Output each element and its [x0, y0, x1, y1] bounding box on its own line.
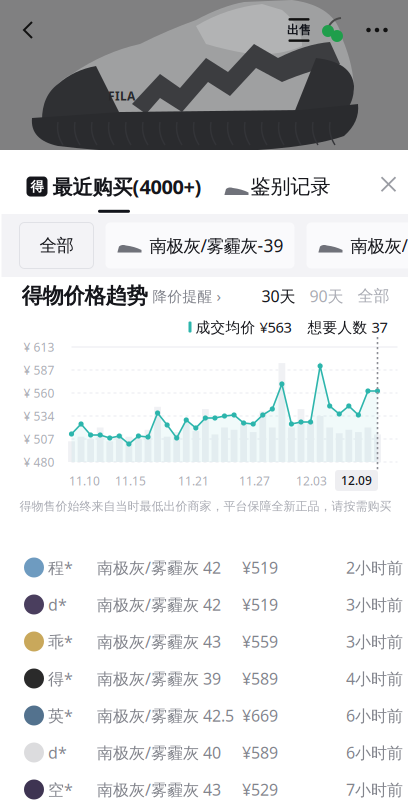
- staticText: 2小时前: [346, 557, 403, 578]
- staticText: 鉴别记录: [250, 174, 330, 199]
- button[interactable]: 南极灰/雾霾灰-4: [306, 222, 408, 268]
- staticText: 南极灰/雾霾灰 43: [97, 631, 221, 652]
- button[interactable]: d*: [0, 586, 408, 623]
- staticText: FILA: [108, 88, 135, 104]
- staticText: 南极灰/雾霾灰 40: [97, 742, 221, 763]
- staticText: d*: [48, 742, 67, 763]
- staticText: 11.27: [239, 473, 270, 489]
- staticText: 11.21: [178, 473, 209, 489]
- staticText: ¥ 534: [23, 408, 54, 424]
- button[interactable]: 南极灰/雾霾灰-39: [105, 222, 294, 268]
- staticText: 11.10: [69, 473, 100, 489]
- staticText: 全部: [39, 235, 73, 256]
- staticText: 11.15: [115, 473, 146, 489]
- staticText: 南极灰/雾霾灰 42.5: [97, 705, 234, 726]
- button[interactable]: 全部: [343, 286, 389, 306]
- button[interactable]: Back: [12, 13, 46, 47]
- button[interactable]: 出售: [282, 13, 316, 47]
- staticText: ¥ 613: [23, 339, 54, 355]
- button[interactable]: 英*: [0, 697, 408, 734]
- staticText: 程*: [48, 557, 73, 578]
- staticText: 得*: [48, 668, 73, 689]
- staticText: ¥559: [242, 631, 278, 652]
- staticText: d*: [48, 594, 67, 615]
- staticText: ¥ 507: [23, 431, 54, 447]
- staticText: 得物售价始终来自当时最低出价商家，平台保障全新正品，请按需购买: [19, 499, 391, 514]
- staticText: ¥589: [242, 668, 278, 689]
- button[interactable]: Customer service: [318, 13, 352, 47]
- staticText: ¥519: [242, 594, 278, 615]
- staticText: 想要人数 37: [291, 317, 387, 337]
- staticText: 出售: [287, 23, 311, 37]
- staticText: ¥ 480: [23, 454, 54, 470]
- button[interactable]: 得物价格趋势: [21, 283, 221, 309]
- button[interactable]: 得*: [0, 660, 408, 697]
- staticText: ¥ 587: [23, 362, 54, 378]
- staticText: 12.03: [296, 473, 327, 489]
- button[interactable]: Close: [371, 167, 405, 201]
- button[interactable]: 全部: [19, 222, 93, 268]
- button[interactable]: 乖*: [0, 623, 408, 660]
- staticText: 全部: [357, 286, 389, 306]
- staticText: 3小时前: [346, 631, 403, 652]
- staticText: 6小时前: [346, 742, 403, 763]
- staticText: ¥529: [242, 779, 278, 800]
- button[interactable]: 程*: [0, 549, 408, 586]
- staticText: 3小时前: [346, 594, 403, 615]
- staticText: 南极灰/雾霾灰-39: [149, 234, 283, 257]
- staticText: 最近购买(4000+): [52, 173, 201, 200]
- button[interactable]: d*: [0, 734, 408, 771]
- staticText: 12.09: [341, 472, 372, 488]
- staticText: 4小时前: [346, 668, 403, 689]
- staticText: 30天: [261, 285, 295, 307]
- staticText: 乖*: [48, 631, 73, 652]
- staticText: ¥ 560: [23, 385, 54, 401]
- staticText: 得: [30, 178, 43, 195]
- button[interactable]: 90天: [295, 285, 343, 307]
- button[interactable]: More: [362, 15, 392, 45]
- button[interactable]: 30天: [261, 285, 295, 307]
- staticText: 7小时前: [346, 779, 403, 800]
- staticText: 南极灰/雾霾灰 42: [97, 594, 221, 615]
- staticText: 南极灰/雾霾灰 42: [97, 557, 221, 578]
- staticText: 降价提醒 ›: [152, 286, 221, 306]
- button[interactable]: 空*: [0, 771, 408, 808]
- staticText: 英*: [48, 705, 73, 726]
- staticText: 成交均价 ¥563: [191, 317, 291, 337]
- staticText: 90天: [309, 285, 343, 307]
- staticText: ¥519: [242, 557, 278, 578]
- staticText: 空*: [48, 779, 73, 800]
- button[interactable]: 鉴别记录: [201, 151, 330, 199]
- staticText: ¥589: [242, 742, 278, 763]
- staticText: 南极灰/雾霾灰 43: [97, 779, 221, 800]
- staticText: 6小时前: [346, 705, 403, 726]
- staticText: 南极灰/雾霾灰-4: [350, 234, 408, 257]
- staticText: ¥669: [242, 705, 278, 726]
- staticText: 得物价格趋势: [21, 283, 147, 309]
- button[interactable]: 得: [1, 151, 201, 213]
- staticText: 南极灰/雾霾灰 39: [97, 668, 221, 689]
